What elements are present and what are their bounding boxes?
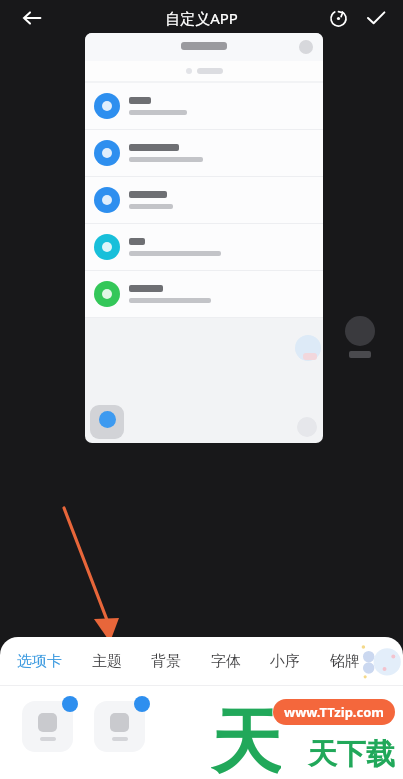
button[interactable]: Widget bbox=[345, 316, 375, 358]
button[interactable] bbox=[85, 130, 323, 176]
staticText: 自定义APP bbox=[165, 8, 238, 28]
button[interactable]: 小序 bbox=[267, 646, 303, 677]
button[interactable]: 背景 bbox=[148, 646, 184, 677]
button[interactable]: Reset bbox=[319, 0, 357, 36]
staticText: 铭牌 bbox=[330, 652, 360, 671]
button[interactable]: 主题 bbox=[89, 646, 125, 677]
staticText: 小序 bbox=[270, 652, 300, 671]
staticText: 字体 bbox=[211, 652, 241, 671]
button[interactable] bbox=[85, 83, 323, 129]
staticText: 天 bbox=[211, 699, 281, 779]
button[interactable] bbox=[85, 224, 323, 270]
button[interactable]: 铭牌 bbox=[327, 646, 363, 677]
staticText: 天下载 bbox=[308, 736, 395, 773]
staticText: www.TTzip.com bbox=[284, 703, 385, 721]
button[interactable]: App item bbox=[94, 696, 150, 752]
staticText: 主题 bbox=[92, 652, 122, 671]
button[interactable]: 选项卡 bbox=[14, 646, 65, 677]
button[interactable]: Back bbox=[12, 0, 52, 36]
button[interactable]: 字体 bbox=[208, 646, 244, 677]
button[interactable] bbox=[85, 177, 323, 223]
button[interactable] bbox=[85, 271, 323, 317]
button[interactable]: Confirm bbox=[357, 0, 395, 36]
staticText: 背景 bbox=[151, 652, 181, 671]
button[interactable]: App item bbox=[22, 696, 78, 752]
staticText: 选项卡 bbox=[17, 652, 62, 671]
button[interactable] bbox=[85, 33, 323, 443]
